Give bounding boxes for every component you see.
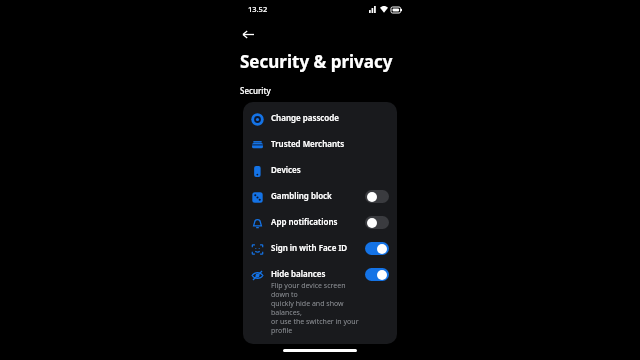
- staticText: Devices: [271, 164, 301, 175]
- button[interactable]: Hide balances: [243, 262, 397, 340]
- button[interactable]: Gambling block: [243, 184, 397, 210]
- staticText: Trusted Merchants: [271, 138, 345, 149]
- button[interactable]: [365, 216, 389, 229]
- button[interactable]: Trusted Merchants: [243, 132, 397, 158]
- staticText: App notifications: [271, 216, 338, 227]
- staticText: Gambling block: [271, 190, 332, 201]
- button[interactable]: [365, 190, 389, 203]
- button[interactable]: [365, 268, 389, 281]
- staticText: Sign in with Face ID: [271, 242, 348, 253]
- staticText: 13.52: [248, 4, 268, 14]
- staticText: Flip your device screen down to quickly …: [271, 281, 361, 335]
- button[interactable]: Devices: [243, 158, 397, 184]
- button[interactable]: App notifications: [243, 210, 397, 236]
- staticText: Change passcode: [271, 112, 339, 123]
- button[interactable]: Sign in with Face ID: [243, 236, 397, 262]
- staticText: Security & privacy: [240, 50, 393, 73]
- staticText: Hide balances: [271, 268, 326, 279]
- button[interactable]: Back: [238, 24, 258, 44]
- button[interactable]: Change passcode: [243, 106, 397, 132]
- button[interactable]: [365, 242, 389, 255]
- staticText: Security: [240, 85, 271, 96]
